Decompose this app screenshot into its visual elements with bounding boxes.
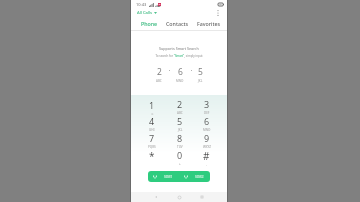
staticText: To search for "Smart", simply input: [155, 54, 203, 58]
staticText: #: [203, 149, 210, 163]
staticText: PQRS: [148, 145, 156, 149]
button[interactable]: 1: [138, 98, 166, 115]
staticText: 10:43: [136, 2, 147, 7]
button[interactable]: Contacts: [166, 17, 189, 30]
staticText: JKL: [178, 128, 183, 132]
staticText: DEF: [204, 111, 210, 115]
staticText: ;: [206, 164, 207, 166]
button[interactable]: 8: [166, 132, 193, 149]
button[interactable]: Back: [151, 192, 161, 202]
staticText: ∞: [151, 112, 154, 115]
button[interactable]: 4: [138, 115, 166, 132]
staticText: 9: [204, 132, 210, 144]
button[interactable]: All Calls: [137, 10, 157, 16]
button[interactable]: Phone: [141, 17, 158, 30]
button[interactable]: 0: [166, 149, 193, 166]
button[interactable]: 5: [166, 115, 193, 132]
staticText: ABC: [177, 111, 183, 115]
button[interactable]: More options: [214, 9, 222, 17]
staticText: SIM2: [195, 174, 204, 179]
staticText: 2: [177, 98, 183, 110]
button[interactable]: 3: [193, 98, 220, 115]
button[interactable]: Favorites: [197, 17, 220, 30]
button[interactable]: SIM2: [179, 171, 210, 182]
staticText: 1: [149, 99, 155, 111]
button[interactable]: 7: [138, 132, 166, 149]
staticText: 5: [198, 66, 203, 78]
staticText: MNO: [176, 79, 184, 83]
button[interactable]: Home: [174, 192, 184, 202]
staticText: Supports Smart Search: [159, 46, 199, 51]
staticText: All Calls: [137, 10, 153, 16]
button[interactable]: 6: [193, 115, 220, 132]
staticText: Favorites: [197, 20, 220, 27]
staticText: 3: [204, 98, 210, 110]
staticText: Contacts: [166, 20, 189, 27]
staticText: 6: [178, 66, 183, 78]
button[interactable]: *: [138, 149, 166, 166]
staticText: 6: [204, 115, 210, 127]
staticText: SIM1: [164, 174, 173, 179]
staticText: 0: [177, 149, 183, 161]
button[interactable]: 9: [193, 132, 220, 149]
staticText: TUV: [177, 145, 183, 149]
staticText: *: [149, 149, 155, 163]
button[interactable]: 2: [166, 98, 193, 115]
staticText: 8: [177, 132, 183, 144]
staticText: Phone: [141, 20, 158, 27]
staticText: 7: [149, 132, 155, 144]
staticText: +: [179, 162, 181, 166]
staticText: 4: [149, 115, 155, 127]
staticText: WXYZ: [203, 145, 211, 149]
button[interactable]: #: [193, 149, 220, 166]
button[interactable]: SIM1: [148, 171, 179, 182]
staticText: GHI: [149, 128, 155, 132]
staticText: 2: [157, 66, 162, 78]
staticText: 5: [177, 115, 183, 127]
staticText: JKL: [198, 79, 203, 83]
staticText: MNO: [203, 128, 211, 132]
button[interactable]: Recents: [197, 192, 207, 202]
staticText: ABC: [156, 79, 162, 83]
